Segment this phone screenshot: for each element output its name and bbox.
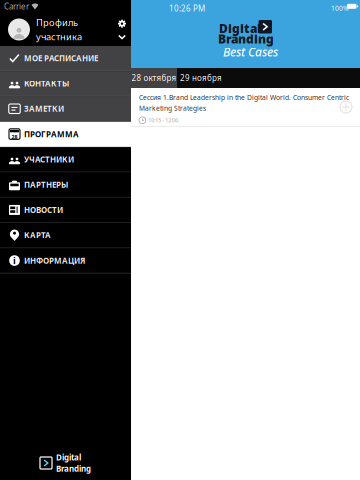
button[interactable]: ПАРТНЕРЫ bbox=[0, 172, 131, 198]
button[interactable]: НОВОСТИ bbox=[0, 198, 131, 223]
staticText: Профиль bbox=[36, 16, 78, 28]
staticText: Branding bbox=[56, 463, 91, 474]
staticText: 10:15 - 12:00 bbox=[148, 117, 178, 124]
staticText: Marketing Strategies bbox=[139, 104, 206, 113]
staticText: НОВОСТИ bbox=[24, 205, 63, 215]
staticText: i bbox=[13, 254, 16, 267]
staticText: КАРТА bbox=[24, 230, 51, 240]
staticText: Branding bbox=[218, 31, 274, 47]
staticText: Digital bbox=[56, 452, 81, 463]
staticText: Carrier bbox=[4, 1, 29, 12]
staticText: ПАРТНЕРЫ bbox=[24, 179, 68, 190]
staticText: МОЕ РАСПИСАНИЕ bbox=[24, 53, 98, 63]
staticText: ИНФОРМАЦИЯ bbox=[24, 255, 85, 266]
button[interactable]: МОЕ РАСПИСАНИЕ bbox=[0, 46, 131, 71]
button[interactable]: 28 bbox=[0, 122, 131, 147]
staticText: Best Cases bbox=[223, 44, 278, 60]
staticText: ЗАМЕТКИ bbox=[24, 103, 64, 114]
staticText: 28 bbox=[11, 133, 17, 140]
staticText: Digital bbox=[219, 20, 261, 36]
button[interactable]: Сессия 1.Brand Leadership in the Digital… bbox=[131, 88, 360, 126]
staticText: участника bbox=[36, 30, 82, 43]
staticText: УЧАСТНИКИ bbox=[24, 154, 74, 165]
button[interactable]: i bbox=[0, 248, 131, 274]
button[interactable]: 29 ноября bbox=[177, 68, 225, 88]
staticText: 29 ноября bbox=[180, 73, 222, 83]
button[interactable]: 28 октября bbox=[131, 68, 177, 88]
staticText: ПРОГРАММА bbox=[24, 129, 79, 139]
button[interactable]: КАРТА bbox=[0, 223, 131, 248]
staticText: 28 октября bbox=[131, 73, 176, 83]
staticText: Сессия 1.Brand Leadership in the Digital… bbox=[139, 93, 349, 102]
button[interactable]: ЗАМЕТКИ bbox=[0, 97, 131, 122]
button[interactable]: КОНТАКТЫ bbox=[0, 71, 131, 97]
button[interactable]: Профиль bbox=[0, 13, 131, 46]
button[interactable]: УЧАСТНИКИ bbox=[0, 147, 131, 172]
staticText: КОНТАКТЫ bbox=[24, 78, 69, 89]
staticText: 10:26 PM bbox=[169, 3, 205, 14]
staticText: 100% bbox=[331, 4, 349, 13]
